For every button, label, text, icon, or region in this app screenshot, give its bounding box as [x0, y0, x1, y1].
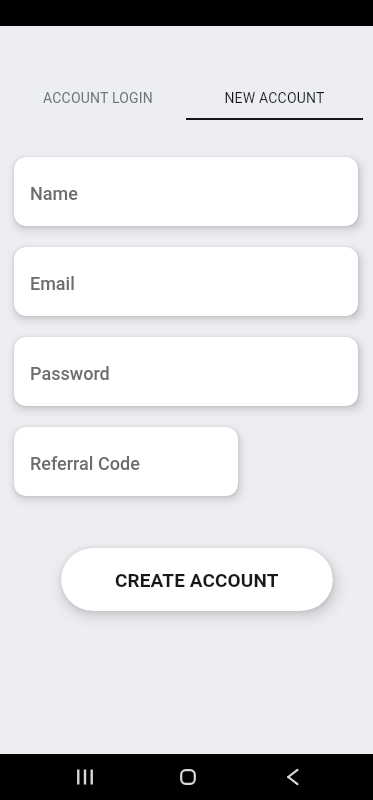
- button[interactable]: NEW ACCOUNT: [186, 90, 363, 120]
- staticText: Password: [30, 363, 110, 384]
- button[interactable]: Email: [14, 247, 358, 316]
- staticText: Email: [30, 273, 75, 294]
- button[interactable]: Password: [14, 337, 358, 406]
- staticText: NEW ACCOUNT: [224, 90, 325, 106]
- button[interactable]: Name: [14, 157, 358, 226]
- staticText: CREATE ACCOUNT: [115, 569, 279, 591]
- button[interactable]: Referral Code: [14, 427, 238, 496]
- button[interactable]: Home: [167, 762, 209, 792]
- button[interactable]: Recent apps: [63, 762, 105, 792]
- button[interactable]: Back: [272, 762, 314, 792]
- button[interactable]: ACCOUNT LOGIN: [10, 90, 186, 120]
- staticText: ACCOUNT LOGIN: [43, 90, 153, 106]
- staticText: Name: [30, 183, 78, 204]
- button[interactable]: CREATE ACCOUNT: [61, 548, 333, 611]
- staticText: Referral Code: [30, 453, 140, 474]
